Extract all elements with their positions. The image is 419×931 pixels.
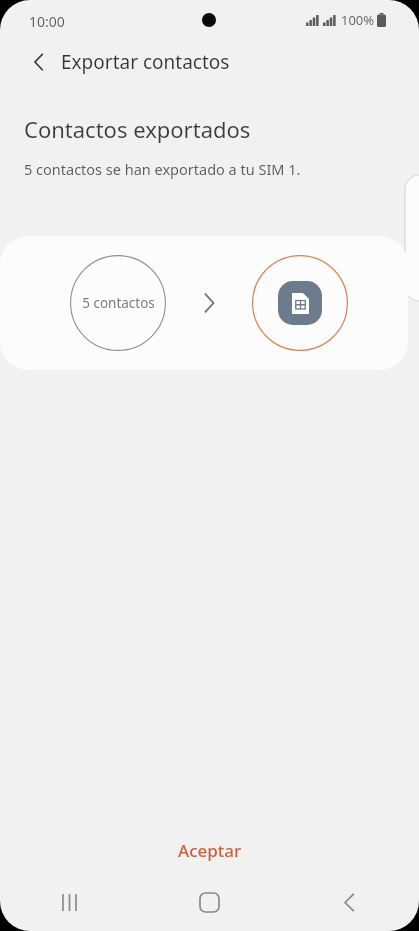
button[interactable]: Back (279, 873, 419, 931)
button[interactable]: Home (139, 873, 279, 931)
staticText: 100% (341, 11, 375, 29)
staticText: Contactos exportados (24, 114, 251, 144)
staticText: Exportar contactos (61, 49, 230, 75)
staticText: Aceptar (178, 839, 242, 862)
staticText: 5 contactos se han exportado a tu SIM 1. (24, 159, 301, 179)
button[interactable]: Aceptar (0, 828, 419, 872)
button[interactable]: Back (18, 41, 60, 83)
staticText: 5 contactos (82, 294, 155, 312)
button[interactable]: 5 contactos (0, 236, 408, 370)
button[interactable]: Recent apps (0, 873, 139, 931)
staticText: 10:00 (29, 12, 65, 31)
